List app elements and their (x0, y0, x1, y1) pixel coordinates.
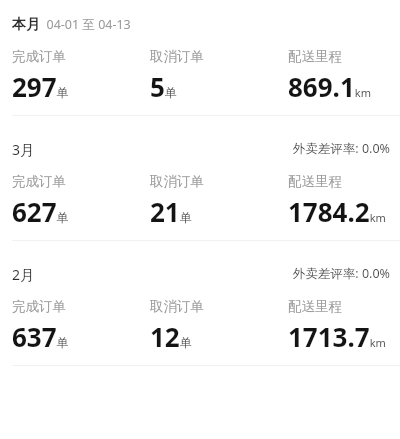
staticText: 3月 (12, 140, 35, 159)
staticText: 21单 (150, 194, 192, 229)
staticText: 外卖差评率: 0.0% (292, 265, 390, 282)
staticText: 297单 (12, 69, 69, 104)
staticText: 取消订单 (150, 173, 204, 190)
staticText: 1784.2km (288, 194, 386, 229)
staticText: 本月 04-01 至 04-13 (12, 16, 131, 34)
staticText: 2月 (12, 265, 35, 284)
staticText: 1713.7km (288, 319, 386, 354)
staticText: 完成订单 (12, 298, 66, 315)
staticText: 869.1km (288, 69, 371, 104)
staticText: 配送里程 (288, 298, 342, 315)
button[interactable]: 3月 (0, 116, 400, 231)
staticText: 取消订单 (150, 298, 204, 315)
staticText: 12单 (150, 319, 192, 354)
staticText: 完成订单 (12, 173, 66, 190)
staticText: 完成订单 (12, 48, 66, 65)
button[interactable]: 本月 04-01 至 04-13 (0, 0, 400, 106)
staticText: 5单 (150, 69, 177, 104)
button[interactable]: 2月 (0, 241, 400, 356)
staticText: 取消订单 (150, 48, 204, 65)
staticText: 外卖差评率: 0.0% (292, 140, 390, 157)
staticText: 配送里程 (288, 48, 342, 65)
staticText: 637单 (12, 319, 69, 354)
staticText: 627单 (12, 194, 69, 229)
staticText: 配送里程 (288, 173, 342, 190)
